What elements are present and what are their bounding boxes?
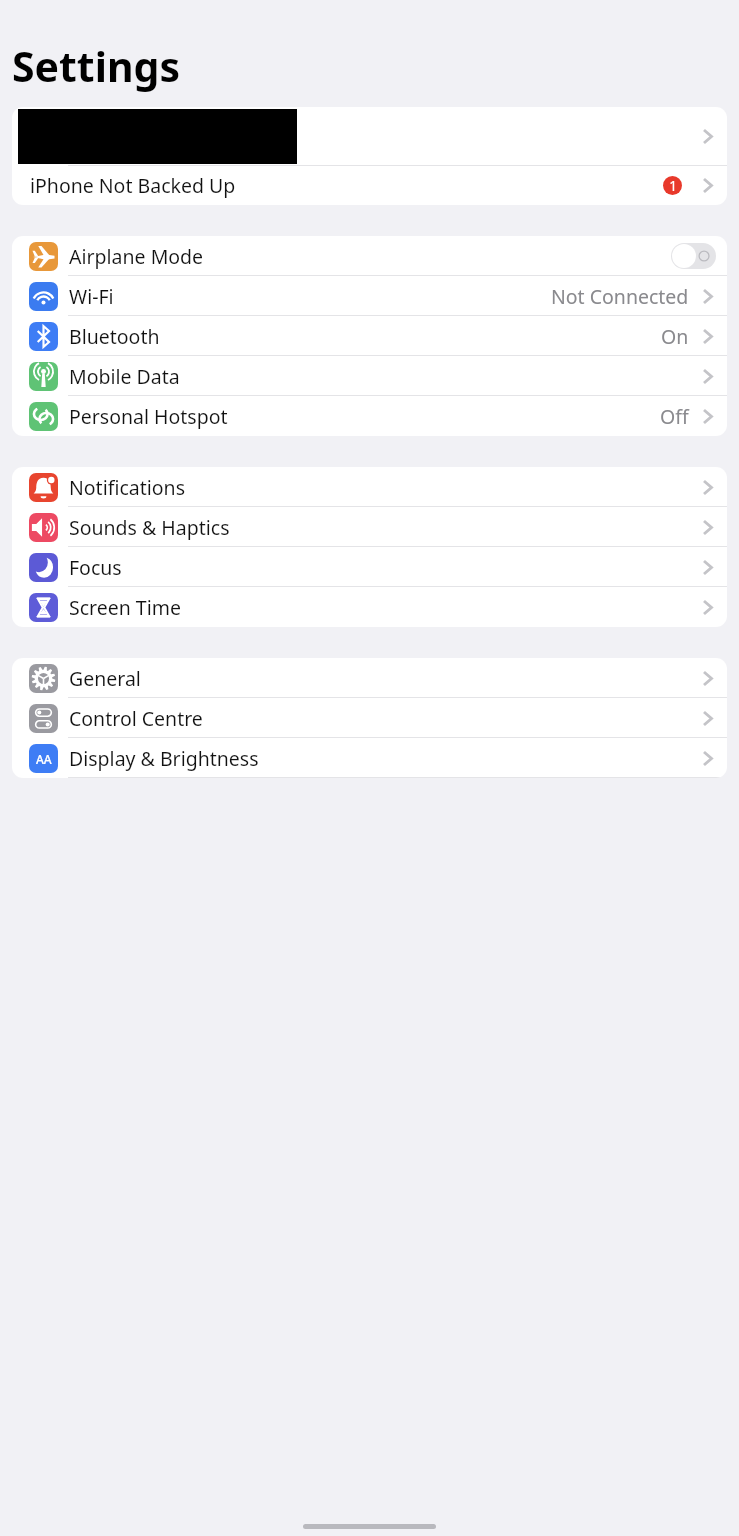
button[interactable]: Wi-Fi (12, 276, 727, 316)
button[interactable]: Focus (12, 547, 727, 587)
staticText: Notifications (69, 474, 185, 501)
staticText: Focus (69, 554, 122, 581)
button[interactable]: iPhone Not Backed Up (12, 166, 727, 205)
staticText: Mobile Data (69, 363, 180, 390)
staticText: Control Centre (69, 705, 203, 732)
staticText: Screen Time (69, 594, 181, 621)
staticText: On (661, 323, 689, 350)
staticText: Airplane Mode (69, 243, 204, 270)
staticText: Sounds & Haptics (69, 514, 230, 541)
button[interactable]: Screen Time (12, 587, 727, 627)
staticText: General (69, 665, 141, 692)
button[interactable]: Sounds & Haptics (12, 507, 727, 547)
button[interactable]: Airplane Mode off (671, 243, 716, 269)
staticText: Settings (12, 38, 181, 94)
button[interactable]: Bluetooth (12, 316, 727, 356)
staticText: AA (36, 751, 52, 767)
staticText: iPhone Not Backed Up (30, 172, 236, 199)
button[interactable]: Personal Hotspot (12, 396, 727, 436)
button[interactable]: AA (12, 738, 727, 778)
staticText: Bluetooth (69, 323, 160, 350)
button[interactable]: Notifications (12, 467, 727, 507)
button[interactable]: General (12, 658, 727, 698)
button[interactable]: Control Centre (12, 698, 727, 738)
staticText: Wi-Fi (69, 283, 114, 310)
staticText: Off (660, 403, 689, 430)
staticText: Personal Hotspot (69, 403, 228, 430)
button[interactable] (12, 107, 727, 166)
staticText: 1 (669, 177, 677, 195)
staticText: Not Connected (551, 283, 689, 310)
button[interactable]: Airplane Mode (12, 236, 727, 276)
staticText: Display & Brightness (69, 745, 259, 772)
button[interactable]: Mobile Data (12, 356, 727, 396)
